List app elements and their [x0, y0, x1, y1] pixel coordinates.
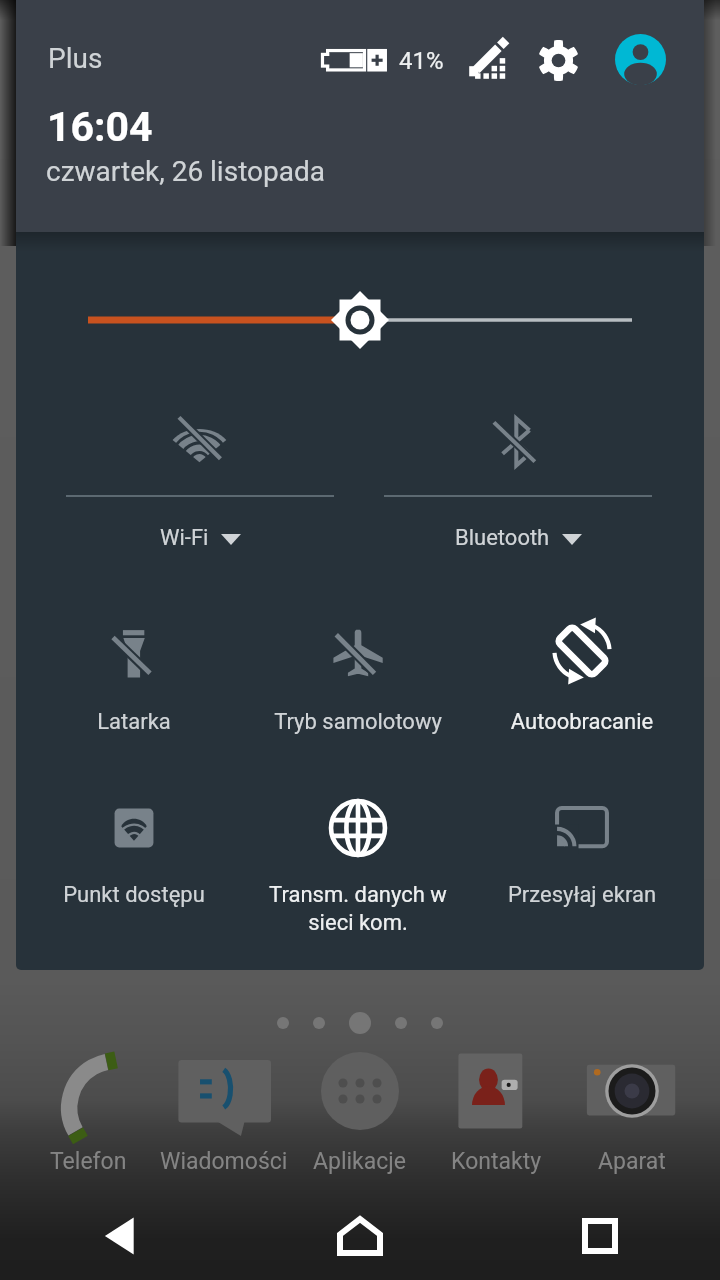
- button[interactable]: User profile: [609, 28, 671, 90]
- button[interactable]: Autoobracanie: [470, 607, 694, 743]
- button[interactable]: Bluetooth off: [368, 398, 668, 568]
- staticText: Tryb samolotowy: [248, 709, 468, 735]
- staticText: 41%: [399, 47, 444, 75]
- staticText: Punkt dostępu: [24, 882, 244, 908]
- button[interactable]: Latarka: [22, 607, 246, 743]
- button[interactable]: Aplikacje: [292, 1038, 428, 1178]
- button[interactable]: Kontakty: [428, 1038, 564, 1178]
- button[interactable]: Punkt dostępu: [22, 784, 246, 920]
- button[interactable]: Aparat: [564, 1038, 700, 1178]
- button[interactable]: Telefon: [20, 1038, 156, 1178]
- button[interactable]: Brightness: [16, 276, 704, 364]
- button[interactable]: Wi-Fi off: [50, 398, 350, 568]
- staticText: Latarka: [24, 709, 244, 735]
- staticText: Wiadomości: [160, 1148, 288, 1175]
- staticText: Autoobracanie: [472, 709, 692, 735]
- staticText: Plus: [48, 42, 103, 75]
- staticText: Bluetooth: [455, 525, 550, 551]
- button[interactable]: Recents: [480, 1192, 720, 1280]
- button[interactable]: Transm. danych w sieci kom.: [246, 784, 470, 920]
- button[interactable]: Przesyłaj ekran: [470, 784, 694, 920]
- staticText: 16:04: [47, 103, 153, 151]
- staticText: Aplikacje: [313, 1148, 407, 1175]
- staticText: Aparat: [598, 1148, 666, 1175]
- staticText: Przesyłaj ekran: [472, 882, 692, 908]
- button[interactable]: Edit quick settings: [462, 29, 522, 89]
- button[interactable]: Tryb samolotowy: [246, 607, 470, 743]
- button[interactable]: Home: [240, 1192, 480, 1280]
- button[interactable]: Wiadomości: [156, 1038, 292, 1178]
- button[interactable]: Settings: [527, 29, 589, 91]
- button[interactable]: Back: [0, 1192, 240, 1280]
- staticText: Telefon: [50, 1148, 127, 1175]
- staticText: Transm. danych w sieci kom.: [248, 882, 468, 936]
- staticText: Wi-Fi: [160, 525, 209, 551]
- staticText: czwartek, 26 listopada: [46, 155, 325, 188]
- staticText: Kontakty: [451, 1148, 542, 1175]
